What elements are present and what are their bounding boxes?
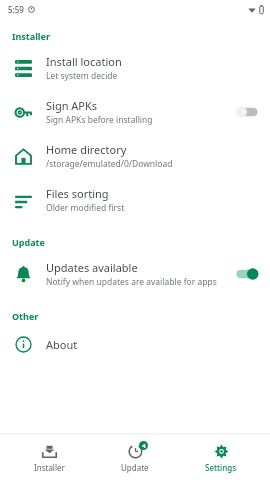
button[interactable]: Installer (12, 434, 86, 480)
staticText: Install location (46, 54, 122, 69)
staticText: Other (12, 310, 39, 322)
staticText: /storage/emulated/0/Download (46, 158, 173, 170)
button[interactable]: Settings (184, 434, 258, 480)
button[interactable]: Files sorting (0, 178, 270, 222)
button[interactable]: About (0, 326, 270, 362)
button[interactable]: Install location (0, 46, 270, 90)
button[interactable]: Toggle off (234, 104, 260, 120)
staticText: Update (121, 462, 149, 473)
staticText: 5:59 (8, 4, 24, 15)
button[interactable]: Toggle on (234, 266, 260, 282)
staticText: Let system decide (46, 70, 118, 82)
staticText: About (46, 337, 78, 352)
staticText: Home directory (46, 142, 127, 157)
staticText: Sign APKs before installing (46, 114, 153, 126)
button[interactable]: Sign APKs (0, 90, 270, 134)
other: Update (128, 444, 143, 459)
other: Settings (214, 444, 229, 459)
staticText: Sign APKs (46, 98, 98, 113)
staticText: Older modified first (46, 202, 125, 214)
button[interactable]: Updates available (0, 252, 270, 296)
staticText: Notify when updates are available for ap… (46, 276, 217, 288)
staticText: 4 (142, 442, 146, 450)
button[interactable]: Update (98, 434, 172, 480)
other: Installer (42, 444, 57, 459)
staticText: Files sorting (46, 186, 109, 201)
staticText: Installer (12, 30, 50, 42)
staticText: Settings (205, 462, 237, 473)
staticText: Installer (34, 462, 65, 473)
staticText: Update (12, 236, 45, 248)
button[interactable]: Home directory (0, 134, 270, 178)
staticText: Updates available (46, 260, 138, 275)
